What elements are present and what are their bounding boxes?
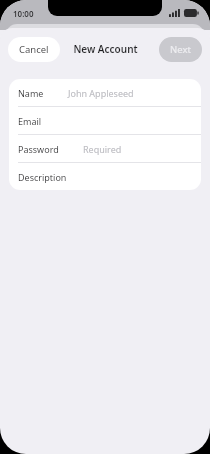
- staticText: Name: [18, 87, 44, 99]
- staticText: Cancel: [19, 43, 49, 56]
- staticText: New Account: [73, 42, 138, 56]
- button[interactable]: Description: [9, 163, 201, 190]
- button[interactable]: Name: [9, 79, 201, 106]
- button[interactable]: Password: [9, 135, 201, 162]
- staticText: Description: [18, 171, 67, 183]
- staticText: Email: [18, 115, 42, 127]
- button[interactable]: Cancel: [8, 37, 60, 62]
- staticText: Password: [18, 143, 59, 155]
- button[interactable]: Next: [159, 37, 202, 62]
- button[interactable]: Email: [9, 107, 201, 134]
- staticText: 10:00: [13, 8, 34, 19]
- staticText: John Appleseed: [68, 87, 134, 99]
- staticText: Next: [170, 43, 191, 56]
- staticText: Required: [83, 143, 122, 155]
